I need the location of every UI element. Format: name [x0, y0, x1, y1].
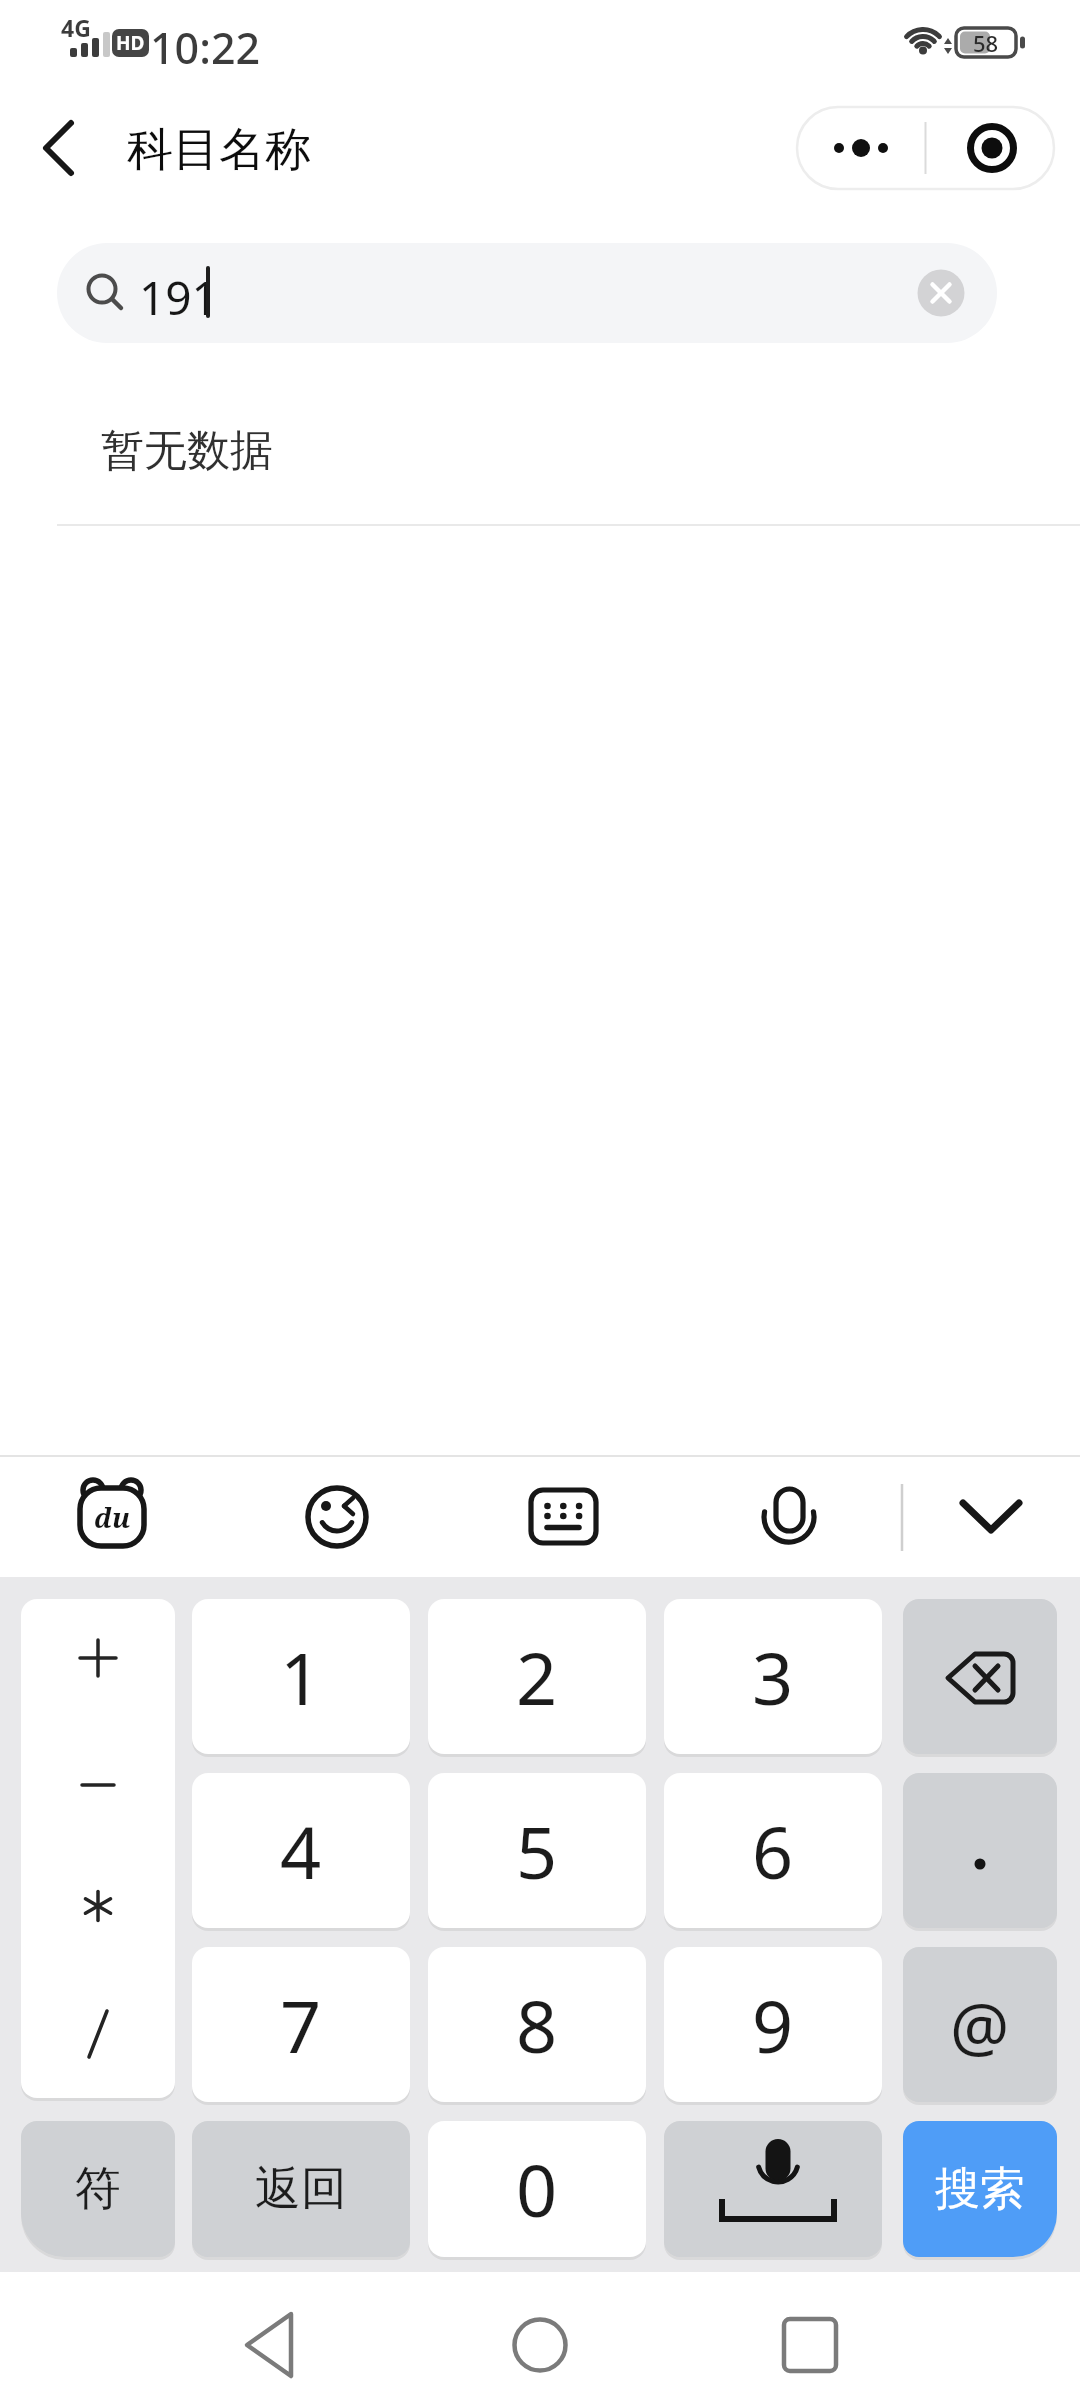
staticText: 符	[75, 2160, 121, 2218]
staticText: 2	[516, 1628, 558, 1726]
staticText: 返回	[255, 2160, 347, 2218]
staticText: 191	[139, 266, 218, 320]
staticText: 搜索	[935, 2161, 1025, 2218]
staticText: 5	[516, 1802, 558, 1900]
staticText: 科目名称	[127, 121, 311, 175]
staticText: 0	[516, 2140, 558, 2238]
staticText: 6	[752, 1802, 794, 1900]
staticText: @	[950, 1980, 1010, 2070]
staticText: 7	[280, 1976, 322, 2074]
staticText: 10:22	[150, 18, 261, 66]
staticText: 4G	[61, 12, 91, 38]
staticText: du	[94, 1499, 131, 1536]
staticText: 1	[280, 1628, 322, 1726]
staticText: 3	[752, 1628, 794, 1726]
staticText: 8	[516, 1976, 558, 2074]
staticText: 58	[973, 28, 999, 57]
staticText: 9	[752, 1976, 794, 2074]
staticText: 4	[280, 1802, 322, 1900]
staticText: HD	[116, 30, 145, 56]
staticText: 暂无数据	[101, 424, 273, 472]
